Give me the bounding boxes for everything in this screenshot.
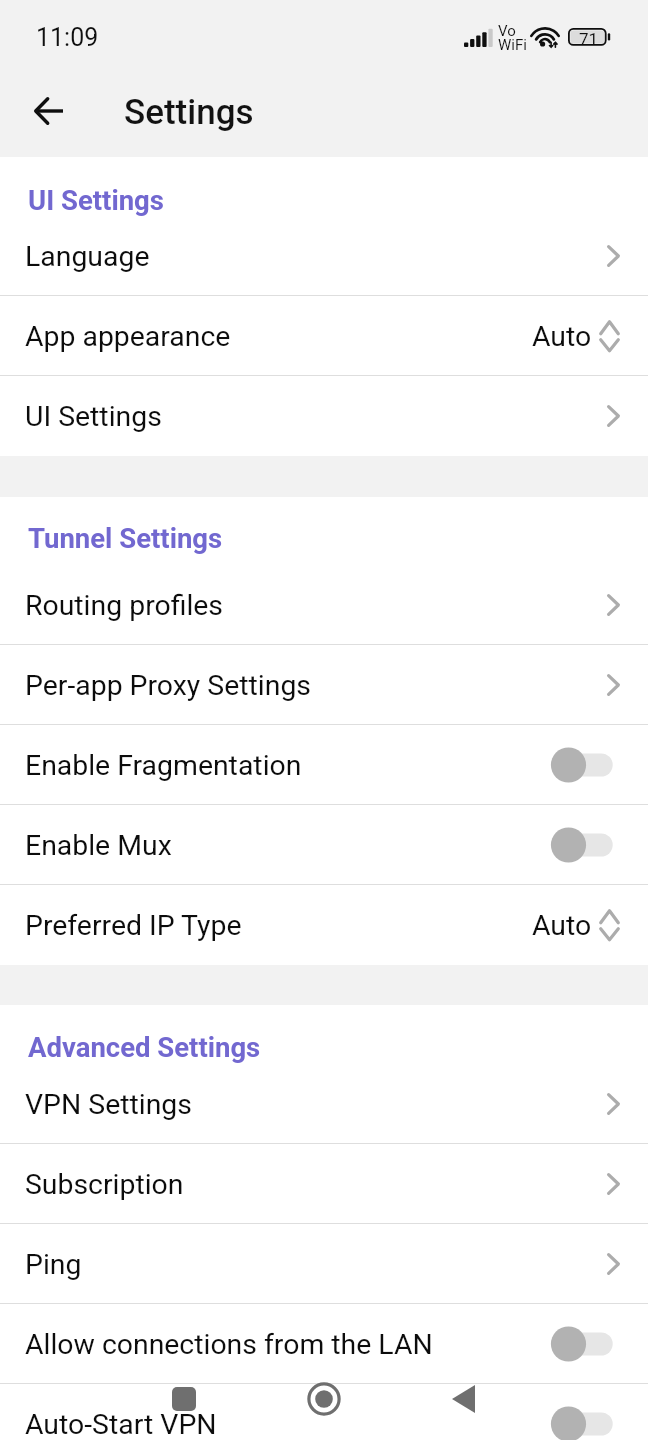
button[interactable]: VPN Settings (0, 1064, 648, 1144)
button[interactable]: Auto-Start VPN (0, 1384, 648, 1440)
button[interactable]: Language (0, 216, 648, 296)
staticText: Auto (532, 320, 592, 353)
staticText: Auto (532, 909, 592, 942)
staticText: App appearance (25, 320, 532, 353)
button[interactable]: Home (301, 1376, 347, 1422)
button[interactable]: Back (21, 83, 77, 139)
staticText: 71 (579, 29, 599, 49)
staticText: Vo (498, 22, 516, 40)
button[interactable]: UI Settings (0, 376, 648, 456)
button[interactable]: App appearance (0, 296, 648, 376)
button[interactable]: Enable Mux (0, 805, 648, 885)
staticText: Tunnel Settings (28, 522, 223, 554)
staticText: Enable Fragmentation (25, 749, 561, 782)
button[interactable]: Per-app Proxy Settings (0, 645, 648, 725)
staticText: Subscription (25, 1168, 607, 1201)
staticText: Preferred IP Type (25, 909, 532, 942)
button[interactable]: Ping (0, 1224, 648, 1304)
staticText: Settings (124, 92, 254, 133)
button[interactable]: Enable Fragmentation (0, 725, 648, 805)
button[interactable]: Toggle (561, 1324, 620, 1364)
staticText: Language (25, 240, 607, 273)
staticText: Enable Mux (25, 829, 561, 862)
button[interactable]: Preferred IP Type (0, 885, 648, 965)
staticText: Per-app Proxy Settings (25, 669, 607, 702)
staticText: VPN Settings (25, 1088, 607, 1121)
staticText: UI Settings (28, 184, 164, 216)
button[interactable]: Toggle (561, 745, 620, 785)
staticText: WiFi (498, 36, 527, 54)
staticText: Routing profiles (25, 589, 607, 622)
staticText: Ping (25, 1248, 607, 1281)
button[interactable]: Toggle (561, 825, 620, 865)
staticText: Allow connections from the LAN (25, 1328, 561, 1361)
button[interactable]: Recents (161, 1376, 207, 1422)
button[interactable]: Subscription (0, 1144, 648, 1224)
staticText: Auto-Start VPN (25, 1408, 561, 1440)
button[interactable]: Allow connections from the LAN (0, 1304, 648, 1384)
button[interactable]: Toggle (561, 1404, 620, 1440)
staticText: Advanced Settings (28, 1031, 261, 1063)
staticText: UI Settings (25, 400, 607, 433)
button[interactable]: Back (440, 1376, 486, 1422)
staticText: 11:09 (36, 23, 99, 52)
button[interactable]: Routing profiles (0, 565, 648, 645)
